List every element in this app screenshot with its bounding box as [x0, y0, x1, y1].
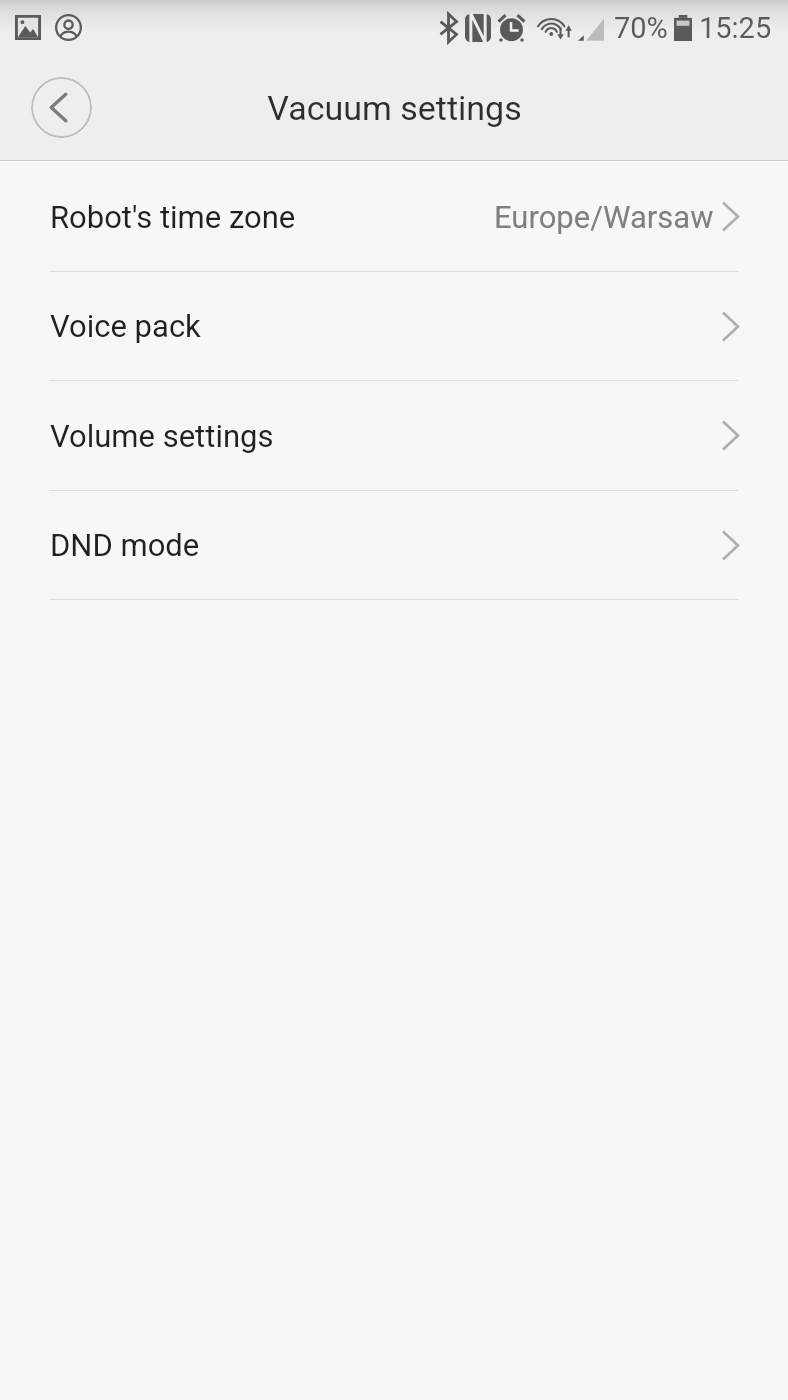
staticText: 70%: [614, 11, 668, 45]
button[interactable]: Back: [31, 77, 92, 138]
button[interactable]: Robot's time zone: [0, 162, 788, 272]
staticText: Robot's time zone: [50, 199, 296, 235]
staticText: Europe/Warsaw: [494, 199, 714, 235]
staticText: 15:25: [699, 11, 772, 45]
staticText: Voice pack: [50, 308, 201, 344]
button[interactable]: Volume settings: [0, 381, 788, 491]
button[interactable]: DND mode: [0, 491, 788, 600]
staticText: Vacuum settings: [267, 88, 522, 128]
staticText: DND mode: [50, 527, 200, 563]
staticText: Volume settings: [50, 418, 274, 454]
button[interactable]: Voice pack: [0, 272, 788, 381]
